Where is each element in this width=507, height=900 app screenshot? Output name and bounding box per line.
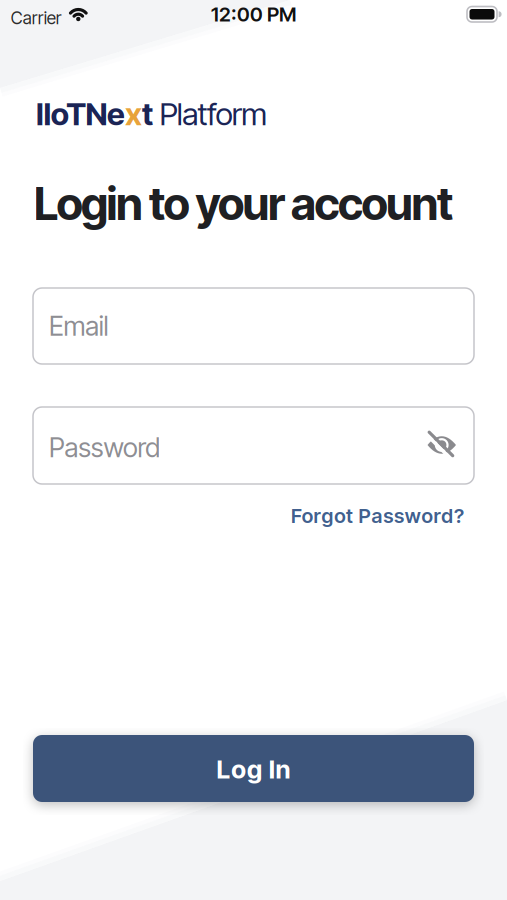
staticText: x: [125, 95, 142, 133]
staticText: Email: [49, 310, 108, 342]
staticText: Carrier: [11, 7, 62, 28]
staticText: t: [142, 95, 153, 133]
staticText: IIoTNe: [36, 95, 125, 133]
staticText: Platform: [153, 95, 267, 133]
staticText: 12:00 PM: [211, 2, 296, 26]
staticText: Password: [49, 431, 160, 464]
staticText: Log In: [216, 754, 290, 785]
staticText: Forgot Password?: [291, 503, 464, 528]
staticText: Login to your account: [34, 176, 453, 231]
